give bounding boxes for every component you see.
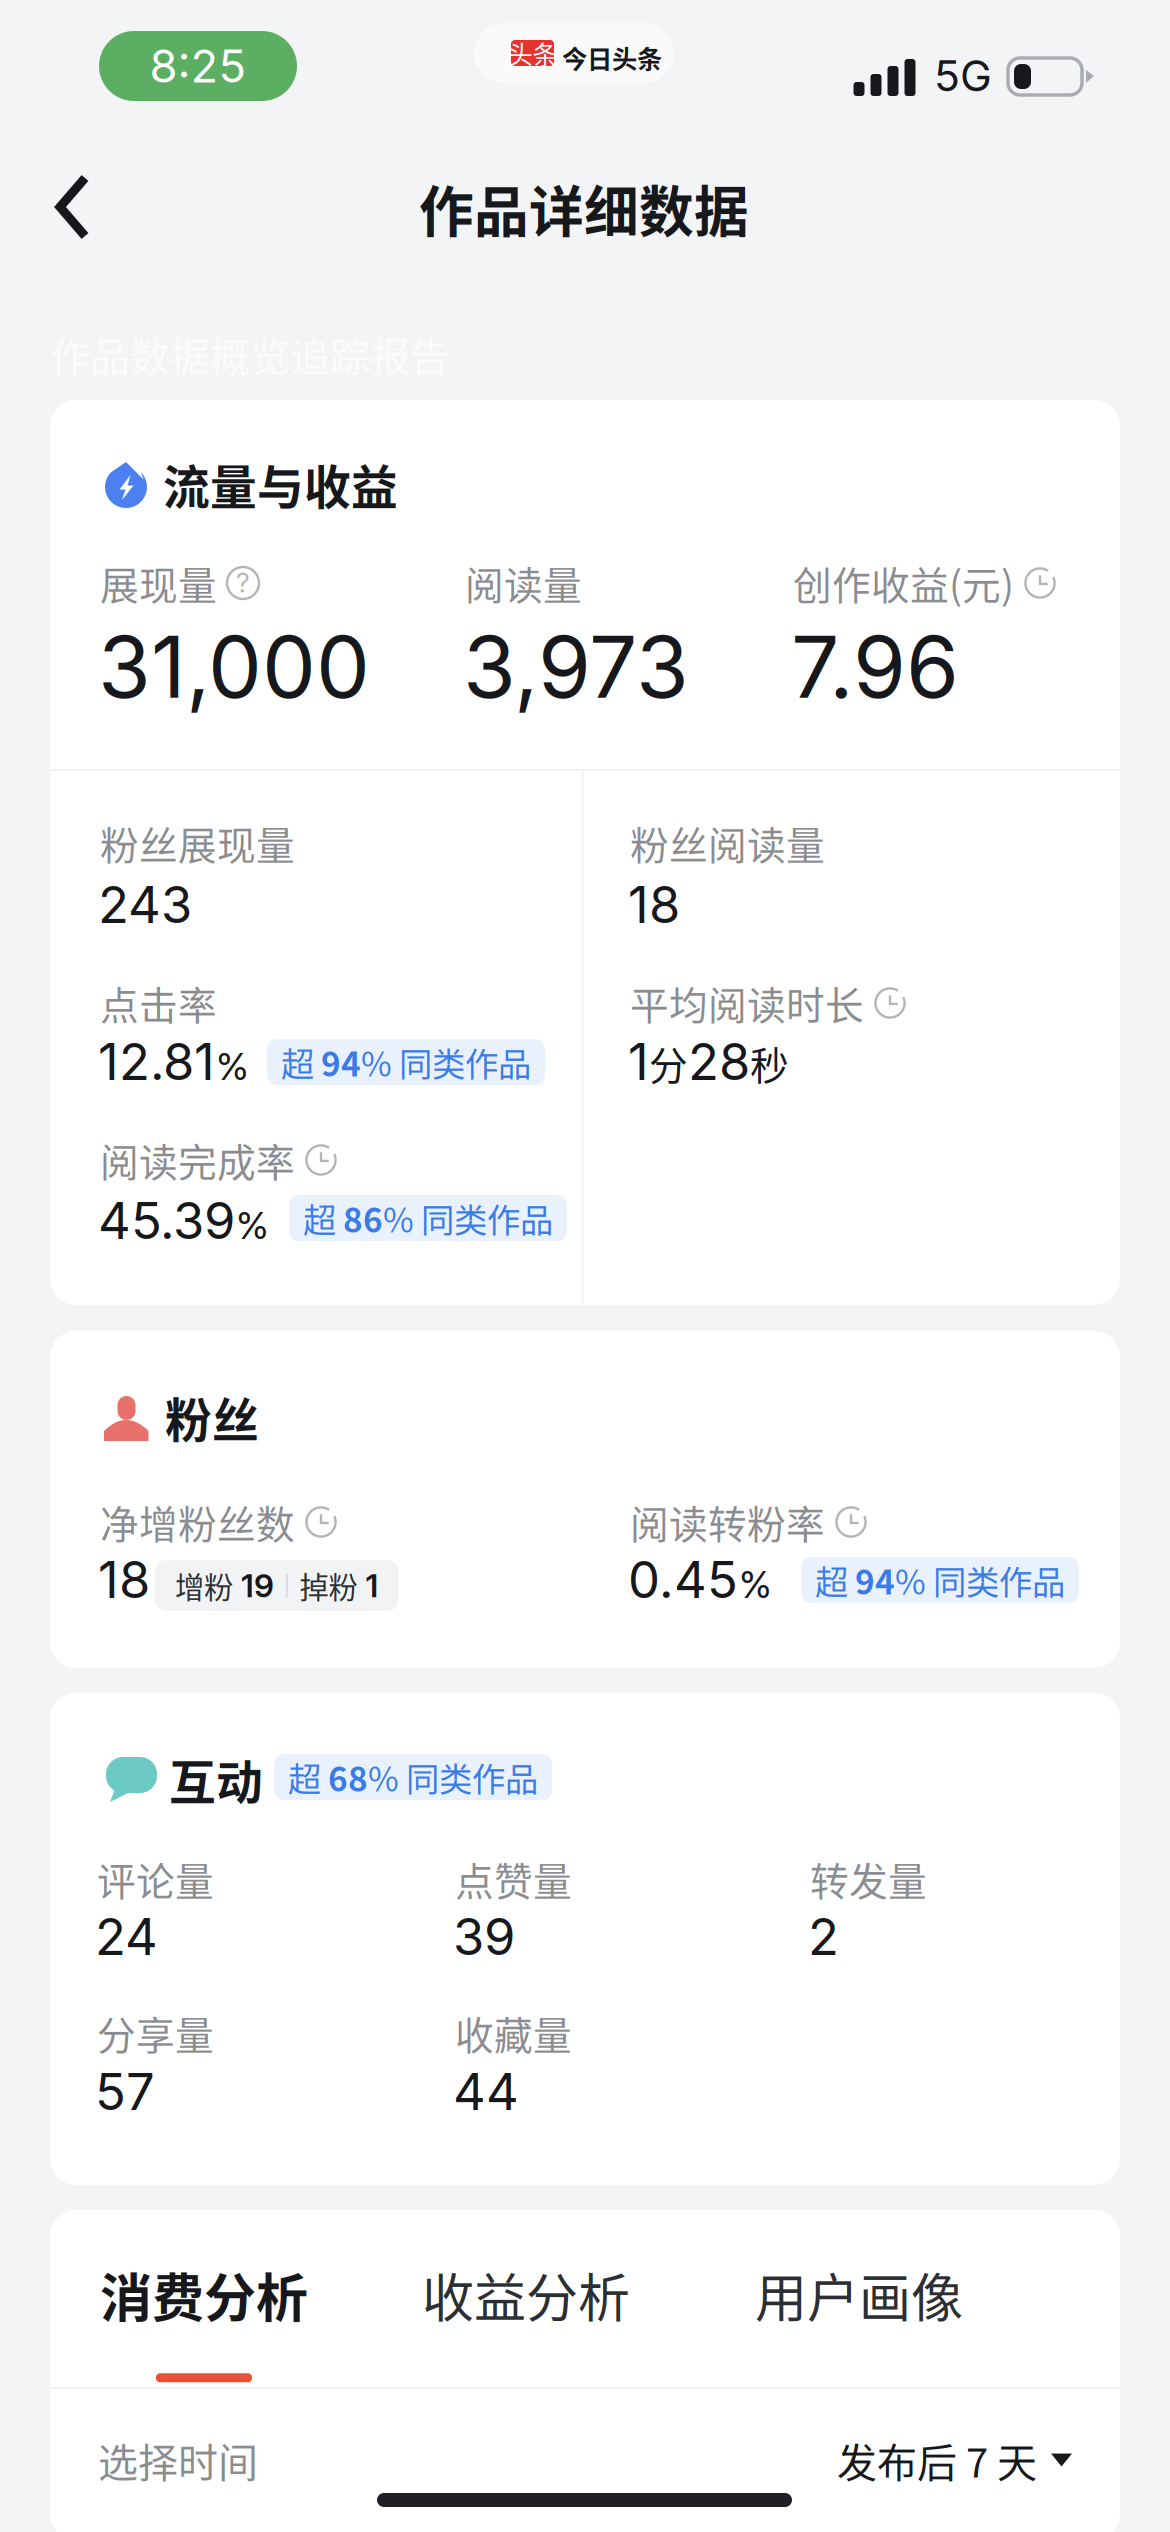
staticText: % [216, 1044, 249, 1089]
staticText: 18 [628, 874, 680, 935]
staticText: 创作收益(元) [793, 555, 1014, 611]
staticText: 点赞量 [455, 1851, 572, 1907]
staticText: 阅读转粉率 [630, 1494, 825, 1550]
staticText: 分 [649, 1035, 688, 1091]
staticText: ? [236, 567, 250, 599]
staticText: 增粉 [175, 1564, 233, 1607]
staticText: 0.45 [628, 1549, 738, 1610]
staticText: 发布后 7 天 [837, 2431, 1037, 2489]
staticText: 超 [281, 1038, 321, 1086]
staticText: 57 [95, 2061, 155, 2122]
staticText: 粉丝阅读量 [630, 815, 825, 871]
staticText: 粉丝展现量 [100, 815, 295, 871]
staticText: 8:25 [149, 39, 246, 93]
staticText: 转发量 [810, 1851, 927, 1907]
staticText: 1 [358, 1566, 379, 1605]
staticText: 消费分析 [100, 2257, 308, 2332]
button[interactable]: 用户 [460, 2245, 592, 2387]
staticText: 用户 [474, 2257, 578, 2332]
staticText: 44 [453, 2061, 519, 2122]
staticText: 展现量 [100, 555, 217, 611]
staticText: % 同类作品 [895, 1556, 1065, 1604]
staticText: 超 [303, 1194, 343, 1242]
button[interactable]: 返回 [34, 152, 111, 262]
staticText: 94 [321, 1038, 361, 1086]
staticText: 19 [233, 1566, 274, 1605]
staticText: 超 [288, 1753, 328, 1801]
staticText: 24 [95, 1906, 158, 1967]
staticText: 掉粉 [300, 1564, 358, 1607]
staticText: 28 [688, 1031, 750, 1092]
staticText: 作品详细数据 [419, 168, 749, 247]
staticText: % 同类作品 [361, 1038, 531, 1086]
staticText: 收藏量 [455, 2005, 572, 2061]
staticText: 分享量 [97, 2005, 214, 2061]
staticText: % 同类作品 [383, 1194, 553, 1242]
staticText: 头条 [507, 35, 557, 71]
staticText: 秒 [750, 1035, 789, 1091]
staticText: % [236, 1203, 269, 1248]
staticText: 净增粉丝数 [100, 1494, 295, 1550]
staticText: 12.81 [98, 1031, 215, 1092]
staticText: 86 [343, 1194, 383, 1242]
staticText: 互动 [169, 1745, 263, 1813]
staticText: 39 [453, 1906, 515, 1967]
staticText: % 同类作品 [368, 1753, 538, 1801]
staticText: 243 [98, 874, 192, 935]
button[interactable]: 消费分析 [86, 2245, 322, 2394]
staticText: 平均阅读时长 [630, 975, 864, 1031]
staticText: 45.39 [98, 1190, 235, 1251]
button[interactable]: 选择时间 [50, 2405, 1120, 2515]
button[interactable]: 用户画像 [741, 2245, 977, 2387]
staticText: 31,000 [98, 615, 370, 718]
staticText: 用户画像 [755, 2257, 963, 2332]
staticText: 94 [855, 1556, 895, 1604]
staticText: 收益分析 [422, 2257, 630, 2332]
staticText: 今日头条 [562, 39, 662, 76]
staticText: 流量与收益 [163, 450, 398, 518]
staticText: 7.96 [791, 615, 959, 718]
staticText: 5G [934, 50, 992, 102]
staticText: 阅读量 [465, 555, 582, 611]
staticText: 点击率 [100, 975, 217, 1031]
staticText: % [739, 1562, 772, 1607]
staticText: 2 [808, 1906, 839, 1967]
staticText: 超 [815, 1556, 855, 1604]
staticText: 68 [328, 1753, 368, 1801]
staticText: 粉丝 [165, 1383, 259, 1451]
staticText: 阅读完成率 [100, 1132, 295, 1188]
staticText: 3,973 [463, 615, 689, 718]
staticText: 评论量 [97, 1851, 214, 1907]
staticText: 选择时间 [98, 2431, 258, 2489]
staticText: 1 [628, 1031, 649, 1092]
staticText: 18 [98, 1549, 150, 1610]
